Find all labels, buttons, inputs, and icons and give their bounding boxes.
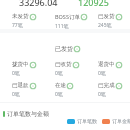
button[interactable]: 未发货 bbox=[12, 13, 36, 29]
staticText: 已完成 bbox=[98, 82, 115, 89]
staticText: 已收货 bbox=[55, 61, 72, 68]
staticText: 111笔 bbox=[55, 23, 69, 30]
staticText: BOSS订单 bbox=[55, 13, 80, 21]
staticText: 0笔 bbox=[55, 70, 63, 77]
staticText: 77笔 bbox=[12, 22, 23, 29]
staticText: 在途 bbox=[55, 82, 66, 89]
staticText: 已退款 bbox=[12, 82, 29, 89]
button[interactable]: 拢货中 bbox=[12, 61, 36, 77]
staticText: 0笔 bbox=[55, 91, 63, 98]
staticText: 订单笔数与金额 bbox=[7, 110, 49, 118]
button[interactable]: 已收货 bbox=[55, 61, 79, 77]
staticText: 已发货 bbox=[98, 13, 115, 20]
staticText: 0笔 bbox=[12, 91, 20, 98]
staticText: 245笔 bbox=[98, 22, 112, 29]
staticText: 订单笔数 bbox=[77, 118, 97, 124]
button[interactable]: 已退款 bbox=[12, 82, 36, 98]
staticText: 0笔 bbox=[12, 70, 20, 77]
button[interactable]: BOSS订单 bbox=[55, 13, 87, 30]
staticText: 退货中 bbox=[98, 61, 115, 68]
staticText: 已发货 bbox=[55, 45, 73, 53]
staticText: 未发货 bbox=[12, 13, 29, 20]
button[interactable]: 已完成 bbox=[98, 82, 122, 98]
staticText: 拢货中 bbox=[12, 61, 29, 68]
button[interactable]: 在途 bbox=[55, 82, 73, 98]
staticText: 33296.04 bbox=[19, 0, 58, 8]
button[interactable]: 退货中 bbox=[98, 61, 122, 77]
button[interactable]: 已发货 bbox=[55, 45, 80, 53]
staticText: 120925 bbox=[78, 0, 109, 8]
staticText: 0笔 bbox=[98, 91, 106, 98]
button[interactable]: 已发货 bbox=[98, 13, 122, 29]
staticText: 0笔 bbox=[98, 70, 106, 77]
staticText: 订单金额 bbox=[112, 118, 130, 124]
